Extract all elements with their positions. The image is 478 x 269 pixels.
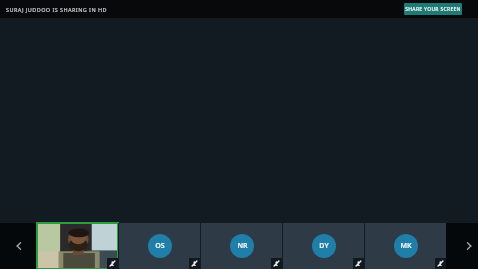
staticText: DY	[319, 241, 329, 251]
staticText: SHARE YOUR SCREEN	[405, 6, 461, 13]
staticText: OS	[155, 241, 165, 251]
button[interactable]: SHARE YOUR SCREEN	[404, 3, 462, 15]
staticText: MK	[400, 241, 412, 251]
button[interactable]: OS	[119, 223, 200, 269]
button[interactable]: Next participants	[460, 223, 478, 269]
button[interactable]: NR	[201, 223, 282, 269]
button[interactable]: DY	[283, 223, 364, 269]
button[interactable]: Previous participants	[0, 223, 37, 269]
staticText: SURAJ JUDDOO IS SHARING IN HD	[6, 6, 107, 13]
staticText: NR	[237, 241, 248, 251]
button[interactable]: MK	[365, 223, 446, 269]
button[interactable]: Suraj Juddoo video	[37, 223, 118, 269]
